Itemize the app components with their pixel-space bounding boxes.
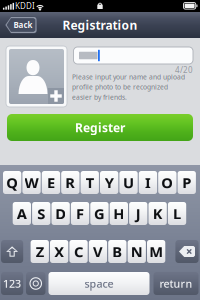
button[interactable]: A (13, 202, 31, 225)
button[interactable]: E (42, 171, 60, 194)
staticText: E (47, 173, 55, 192)
staticText: Please input your name and upload (72, 72, 185, 81)
button[interactable]: Register (7, 114, 193, 141)
staticText: B (112, 242, 122, 261)
button[interactable]: W (22, 171, 41, 194)
staticText: A (17, 204, 27, 223)
button[interactable]: R (61, 171, 79, 194)
button[interactable]: F (71, 202, 89, 225)
button[interactable]: Q (3, 171, 21, 194)
staticText: T (86, 173, 94, 192)
staticText: G (94, 204, 105, 223)
staticText: V (93, 242, 103, 261)
button[interactable]: X (50, 240, 68, 263)
staticText: O (161, 173, 173, 192)
staticText: D (55, 204, 66, 223)
button[interactable]: B (108, 240, 126, 263)
button[interactable]: K (148, 202, 167, 225)
staticText: N (131, 242, 143, 261)
staticText: Register (75, 119, 125, 135)
button[interactable]: H (110, 202, 128, 225)
staticText: X (54, 242, 64, 261)
staticText: return (159, 276, 192, 291)
staticText: W (24, 173, 38, 192)
staticText: J (136, 204, 141, 223)
staticText: F (76, 204, 84, 223)
staticText: R (65, 173, 75, 192)
button[interactable]: V (89, 240, 107, 263)
button[interactable]: 123 (1, 272, 23, 295)
staticText: C (74, 242, 83, 261)
staticText: Back (13, 20, 32, 30)
staticText: H (113, 204, 124, 223)
staticText: KDDI (15, 1, 35, 11)
button[interactable]: Delete (175, 240, 199, 263)
button[interactable]: J (129, 202, 147, 225)
button[interactable]: P (178, 171, 196, 194)
button[interactable]: S (32, 202, 50, 225)
staticText: Registration (62, 17, 137, 33)
button[interactable]: O (158, 171, 176, 194)
staticText: S (37, 204, 45, 223)
staticText: I (145, 173, 151, 192)
staticText: U (123, 173, 134, 192)
button[interactable]: Y (100, 171, 118, 194)
staticText: 4/20 (175, 65, 193, 75)
button[interactable]: space (48, 272, 149, 295)
staticText: M (149, 242, 163, 261)
staticText: Q (6, 173, 18, 192)
button[interactable]: N (128, 240, 146, 263)
button[interactable]: Shift (1, 240, 23, 263)
button[interactable]: M (147, 240, 165, 263)
button[interactable]: T (81, 171, 99, 194)
staticText: profile photo to be recognized (72, 83, 168, 91)
staticText: space (84, 276, 113, 291)
button[interactable]: D (51, 202, 70, 225)
button[interactable]: Next keyboard (26, 272, 45, 295)
button[interactable]: U (119, 171, 138, 194)
button[interactable]: return (153, 272, 198, 295)
staticText: easier by friends. (72, 93, 127, 101)
button[interactable]: G (90, 202, 109, 225)
button[interactable]: Z (31, 240, 49, 263)
button[interactable]: I (139, 171, 157, 194)
button[interactable]: C (69, 240, 88, 263)
staticText: Y (105, 173, 114, 192)
staticText: Z (36, 242, 44, 261)
staticText: 123 (3, 276, 21, 291)
staticText: P (182, 173, 191, 192)
button[interactable]: Back (4, 16, 37, 33)
staticText: K (153, 204, 163, 223)
button[interactable]: L (168, 202, 186, 225)
button[interactable]: Add profile photo (6, 46, 67, 107)
button[interactable]: Name (73, 47, 193, 64)
staticText: L (173, 204, 181, 223)
